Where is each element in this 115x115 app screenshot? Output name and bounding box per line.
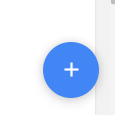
- button[interactable]: Add: [43, 42, 99, 98]
